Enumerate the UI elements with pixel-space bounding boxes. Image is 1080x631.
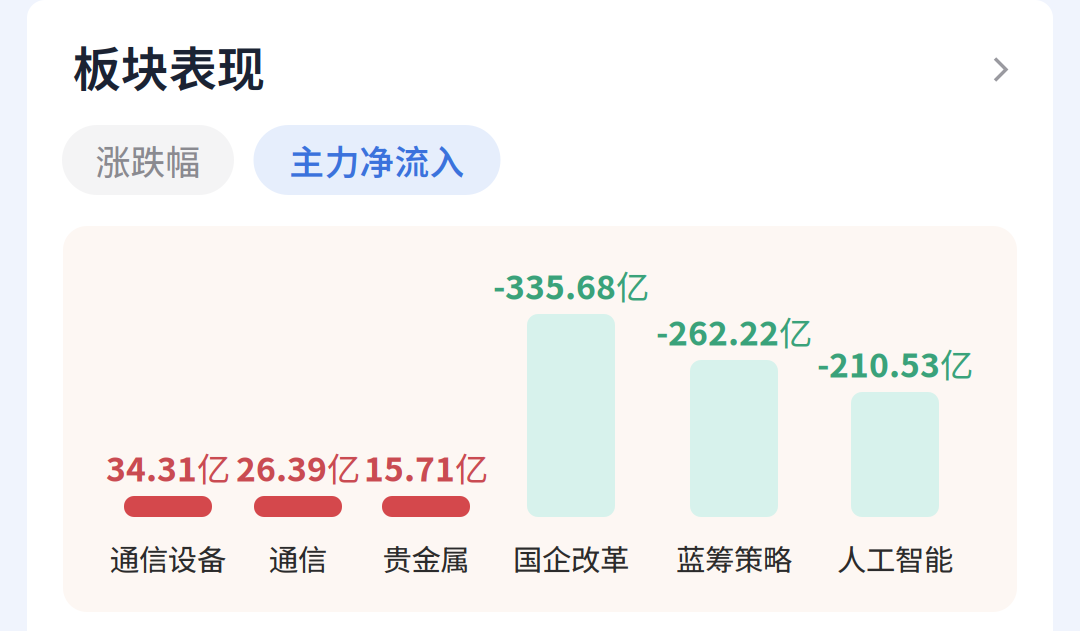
button[interactable]: 涨跌幅	[62, 125, 234, 195]
staticText: 通信设备	[110, 537, 226, 579]
button[interactable]: 主力净流入	[253, 125, 500, 195]
staticText: 涨跌幅	[95, 135, 200, 185]
staticText: 通信	[269, 537, 327, 579]
staticText: 主力净流入	[289, 135, 464, 185]
staticText: 亿	[616, 261, 649, 309]
staticText: 国企改革	[513, 537, 629, 579]
staticText: 亿	[327, 443, 360, 491]
staticText: 26.39	[236, 443, 327, 491]
staticText: 亿	[197, 443, 230, 491]
staticText: 34.31	[106, 443, 197, 491]
staticText: 亿	[940, 339, 973, 387]
staticText: 蓝筹策略	[676, 537, 792, 579]
staticText: 贵金属	[382, 537, 469, 579]
button[interactable]: 板块表现	[63, 24, 1017, 108]
staticText: -262.22	[656, 307, 779, 355]
staticText: 15.71	[364, 443, 455, 491]
staticText: -210.53	[817, 339, 940, 387]
staticText: 亿	[455, 443, 488, 491]
staticText: -335.68	[493, 261, 616, 309]
staticText: 亿	[779, 307, 812, 355]
staticText: 人工智能	[837, 537, 953, 579]
staticText: 板块表现	[73, 31, 265, 101]
